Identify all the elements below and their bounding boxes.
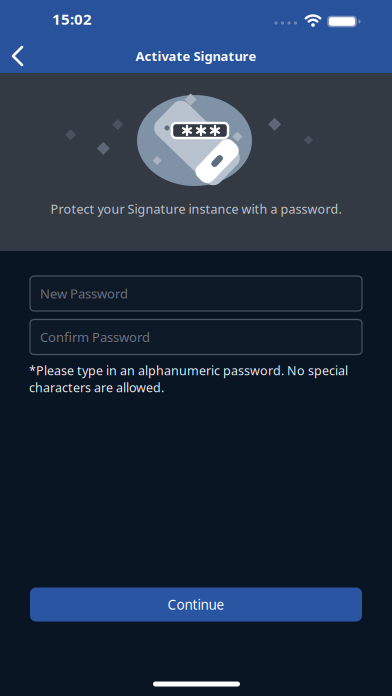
- staticText: Activate Signature: [135, 47, 256, 65]
- staticText: Protect your Signature instance with a p…: [50, 200, 341, 217]
- staticText: *Please type in an alphanumeric password…: [29, 362, 348, 396]
- staticText: New Password: [40, 285, 128, 302]
- button[interactable]: Back: [0, 38, 44, 73]
- staticText: Continue: [167, 595, 224, 614]
- button[interactable]: Continue: [30, 587, 362, 621]
- staticText: 15:02: [52, 9, 92, 29]
- staticText: Confirm Password: [40, 328, 150, 346]
